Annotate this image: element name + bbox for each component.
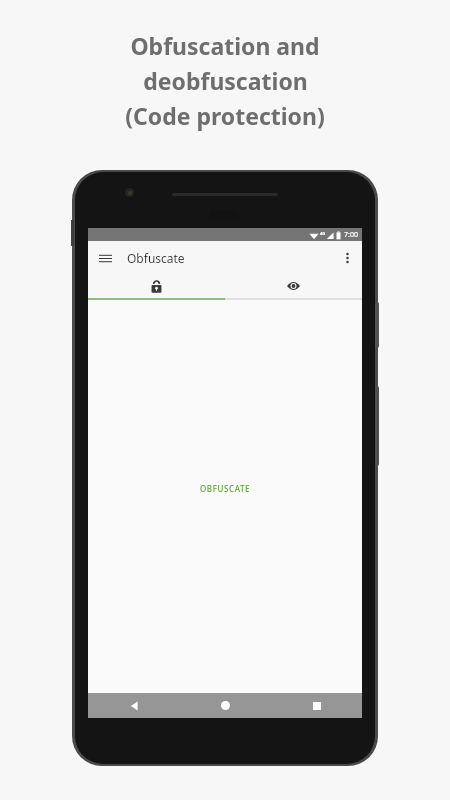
button[interactable]: Back (88, 693, 180, 718)
staticText: Obfuscate (127, 250, 185, 266)
button[interactable]: Home (180, 693, 271, 718)
button[interactable]: Recent apps (271, 693, 362, 718)
staticText: (Code protection) (125, 100, 325, 131)
staticText: 4G (320, 231, 326, 236)
button[interactable]: Open navigation menu (94, 247, 116, 269)
button[interactable]: OBFUSCATE (190, 477, 261, 500)
button[interactable]: Deobfuscate tab (225, 274, 362, 298)
staticText: Obfuscation and (130, 30, 320, 61)
staticText: deobfuscation (143, 65, 308, 96)
staticText: OBFUSCATE (200, 483, 251, 494)
button[interactable]: Obfuscate tab (88, 274, 225, 298)
button[interactable]: More options (337, 248, 357, 268)
staticText: 7:00 (344, 230, 358, 240)
